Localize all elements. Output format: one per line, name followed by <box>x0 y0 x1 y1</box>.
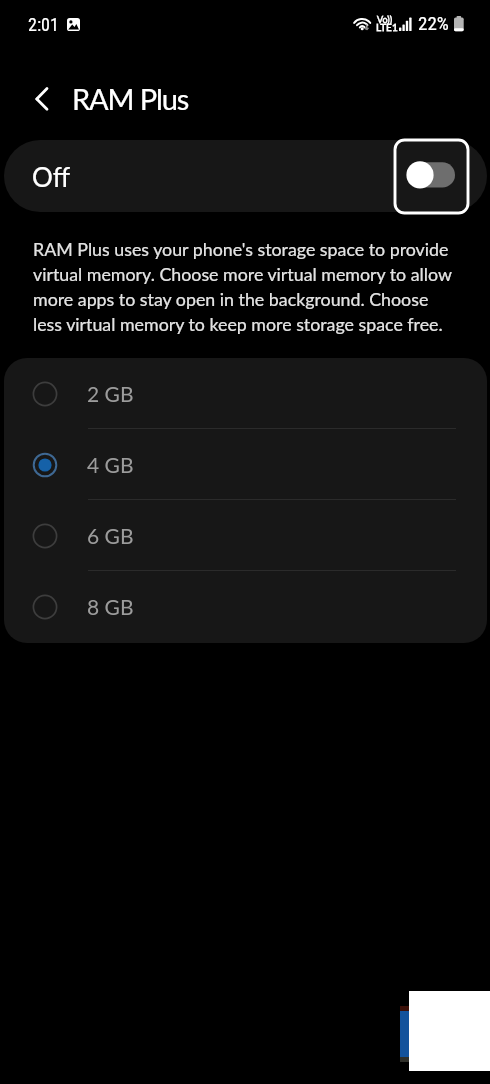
button[interactable]: 6 GB <box>4 500 487 571</box>
staticText: RAM Plus uses your phone's storage space… <box>33 238 457 335</box>
button[interactable]: 2 GB <box>4 358 487 429</box>
button[interactable]: Back <box>24 78 66 120</box>
staticText: 6 GB <box>87 523 134 548</box>
staticText: 2:01 <box>28 14 59 35</box>
button[interactable]: Off <box>4 140 487 212</box>
button[interactable]: 4 GB <box>4 429 487 500</box>
staticText: RAM Plus <box>72 81 189 116</box>
button[interactable]: RAM Plus switch <box>395 140 468 213</box>
staticText: Vo)) <box>377 14 393 25</box>
staticText: 4 GB <box>87 452 134 477</box>
staticText: 2 GB <box>87 381 134 406</box>
staticText: Off <box>32 161 71 192</box>
button[interactable]: 8 GB <box>4 571 487 642</box>
staticText: 8 GB <box>87 594 134 619</box>
staticText: LTE1 <box>376 21 398 33</box>
staticText: 22% <box>418 12 449 34</box>
